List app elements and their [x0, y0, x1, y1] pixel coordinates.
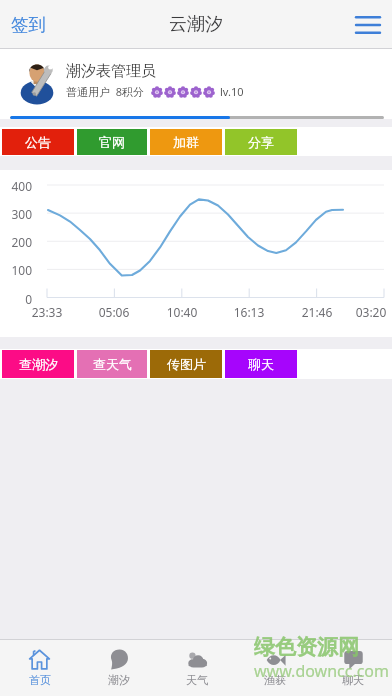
staticText: 传图片: [167, 356, 206, 372]
staticText: 03:20: [351, 304, 391, 320]
button[interactable]: 官网: [77, 129, 147, 155]
staticText: 300: [0, 206, 32, 222]
staticText: 16:13: [229, 304, 269, 320]
staticText: 签到: [11, 14, 46, 36]
button[interactable]: 分享: [225, 129, 297, 155]
staticText: 0: [0, 291, 32, 307]
button[interactable]: 查潮汐: [2, 350, 74, 378]
staticText: 绿色资源网: [254, 634, 359, 660]
staticText: 05:06: [94, 304, 134, 320]
staticText: 21:46: [297, 304, 337, 320]
staticText: 查天气: [93, 356, 132, 372]
staticText: 渔获: [264, 673, 286, 687]
button[interactable]: 签到: [3, 8, 54, 42]
staticText: 天气: [186, 673, 208, 687]
staticText: www.downcc.com: [254, 660, 390, 682]
button[interactable]: 传图片: [150, 350, 222, 378]
button[interactable]: 潮汐表管理员: [0, 49, 392, 107]
button[interactable]: 渔获: [236, 640, 314, 696]
button[interactable]: 聊天: [314, 640, 392, 696]
button[interactable]: 聊天: [225, 350, 297, 378]
staticText: 公告: [25, 134, 51, 150]
staticText: 云潮汐: [169, 13, 223, 36]
staticText: 聊天: [342, 673, 364, 687]
staticText: 潮汐: [108, 673, 130, 687]
staticText: 10:40: [162, 304, 202, 320]
staticText: 首页: [29, 673, 51, 687]
staticText: 23:33: [27, 304, 67, 320]
button[interactable]: 天气: [158, 640, 236, 696]
button[interactable]: 首页: [0, 640, 79, 696]
staticText: 加群: [173, 134, 199, 150]
staticText: 分享: [248, 134, 274, 150]
staticText: 聊天: [248, 356, 274, 372]
button[interactable]: 潮汐: [79, 640, 158, 696]
staticText: 普通用户 8积分: [66, 84, 145, 99]
button[interactable]: 加群: [150, 129, 222, 155]
staticText: 100: [0, 262, 32, 278]
button[interactable]: 公告: [2, 129, 74, 155]
button[interactable]: Menu: [348, 5, 388, 45]
staticText: 查潮汐: [19, 356, 58, 372]
staticText: 400: [0, 178, 32, 194]
button[interactable]: 查天气: [77, 350, 147, 378]
staticText: 潮汐表管理员: [66, 62, 156, 81]
staticText: 官网: [99, 134, 125, 150]
staticText: lv.10: [220, 84, 244, 99]
staticText: 200: [0, 234, 32, 250]
